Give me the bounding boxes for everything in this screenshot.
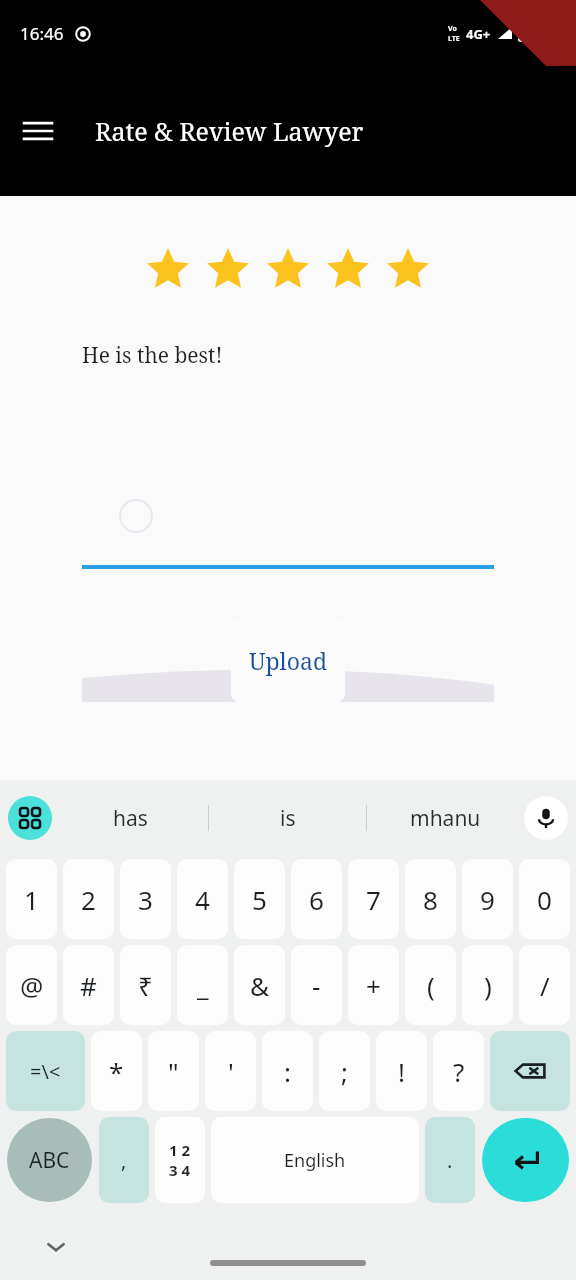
staticText: _ [197,968,209,1003]
button[interactable]: Open navigation menu [12,105,64,157]
staticText: 1 [24,882,39,917]
button[interactable]: Backspace [490,1031,570,1111]
button[interactable]: is [209,780,366,856]
button[interactable]: 7 [348,859,399,939]
button[interactable]: & [234,945,285,1025]
button[interactable]: 4 [177,859,228,939]
button[interactable]: Numbers [155,1117,205,1203]
button[interactable]: # [63,945,114,1025]
staticText: 6 [309,882,324,917]
button[interactable]: 8 [405,859,456,939]
button[interactable]: . [425,1117,475,1203]
staticText: . [447,1147,453,1174]
staticText: 3 [138,882,153,917]
staticText: ! [398,1054,405,1089]
staticText: ABC [29,1146,70,1175]
staticText: ' [228,1054,234,1089]
staticText: 8 [423,882,438,917]
button[interactable]: 0 [519,859,570,939]
staticText: is [280,804,296,833]
staticText: + [366,968,381,1003]
button[interactable]: Rate 5 stars [378,246,438,294]
button[interactable]: : [262,1031,313,1111]
staticText: 2 [81,882,96,917]
button[interactable]: ) [462,945,513,1025]
staticText: 9 [480,882,495,917]
button[interactable]: 3 [120,859,171,939]
button[interactable]: + [348,945,399,1025]
staticText: ? [453,1054,465,1089]
button[interactable]: " [148,1031,199,1111]
staticText: Rate & Review Lawyer [95,114,364,148]
staticText: ; [341,1054,348,1089]
staticText: , [121,1147,127,1174]
button[interactable]: 2 [63,859,114,939]
staticText: 0 [537,882,552,917]
button[interactable]: mhanu [367,780,524,856]
staticText: @ [20,968,44,1003]
staticText: 7 [366,882,381,917]
staticText: 16:46 [20,22,64,45]
staticText: =\< [30,1058,61,1085]
button[interactable]: * [91,1031,142,1111]
staticText: 3 4 [169,1160,191,1180]
staticText: mhanu [410,804,481,833]
button[interactable]: , [99,1117,149,1203]
staticText: # [80,968,97,1003]
button[interactable]: 9 [462,859,513,939]
staticText: ) [484,968,492,1003]
button[interactable]: ! [376,1031,427,1111]
button[interactable]: Rate 1 stars [138,246,198,294]
button[interactable]: 1 [6,859,57,939]
button[interactable]: Voice input [524,796,568,840]
button[interactable]: Rate 2 stars [198,246,258,294]
staticText: 1 2 [169,1140,191,1160]
staticText: & [250,968,270,1003]
staticText: has [113,804,148,833]
button[interactable]: Upload [231,618,345,703]
staticText: Upload [249,645,328,676]
staticText: * [109,1054,124,1089]
staticText: - [312,968,321,1003]
staticText: English [284,1148,346,1173]
staticText: ( [427,968,435,1003]
staticText: ₹ [138,968,153,1003]
button[interactable]: 5 [234,859,285,939]
button[interactable]: Keyboard tools [8,796,52,840]
staticText: / [540,968,550,1003]
staticText: : [284,1054,291,1089]
staticText: 4G+ [466,25,491,43]
staticText: Vo [448,24,457,34]
staticText: LTE [448,34,460,44]
button[interactable]: - [291,945,342,1025]
button[interactable]: has [52,780,208,856]
button[interactable]: Enter [482,1118,569,1202]
button[interactable]: 6 [291,859,342,939]
button[interactable]: ? [433,1031,484,1111]
button[interactable]: ( [405,945,456,1025]
button[interactable]: _ [177,945,228,1025]
button[interactable]: =\< [6,1031,85,1111]
button[interactable]: Rate 3 stars [258,246,318,294]
button[interactable]: ; [319,1031,370,1111]
button[interactable]: @ [6,945,57,1025]
staticText: " [168,1054,179,1089]
staticText: He is the best! [82,341,223,370]
staticText: 5 [252,882,267,917]
button[interactable]: ABC [7,1118,92,1202]
button[interactable]: ₹ [120,945,171,1025]
button[interactable]: Hide keyboard [38,1229,74,1265]
staticText: 4 [195,882,210,917]
button[interactable]: English [211,1117,419,1203]
button[interactable]: ' [205,1031,256,1111]
button[interactable]: Rate 4 stars [318,246,378,294]
button[interactable]: / [519,945,570,1025]
